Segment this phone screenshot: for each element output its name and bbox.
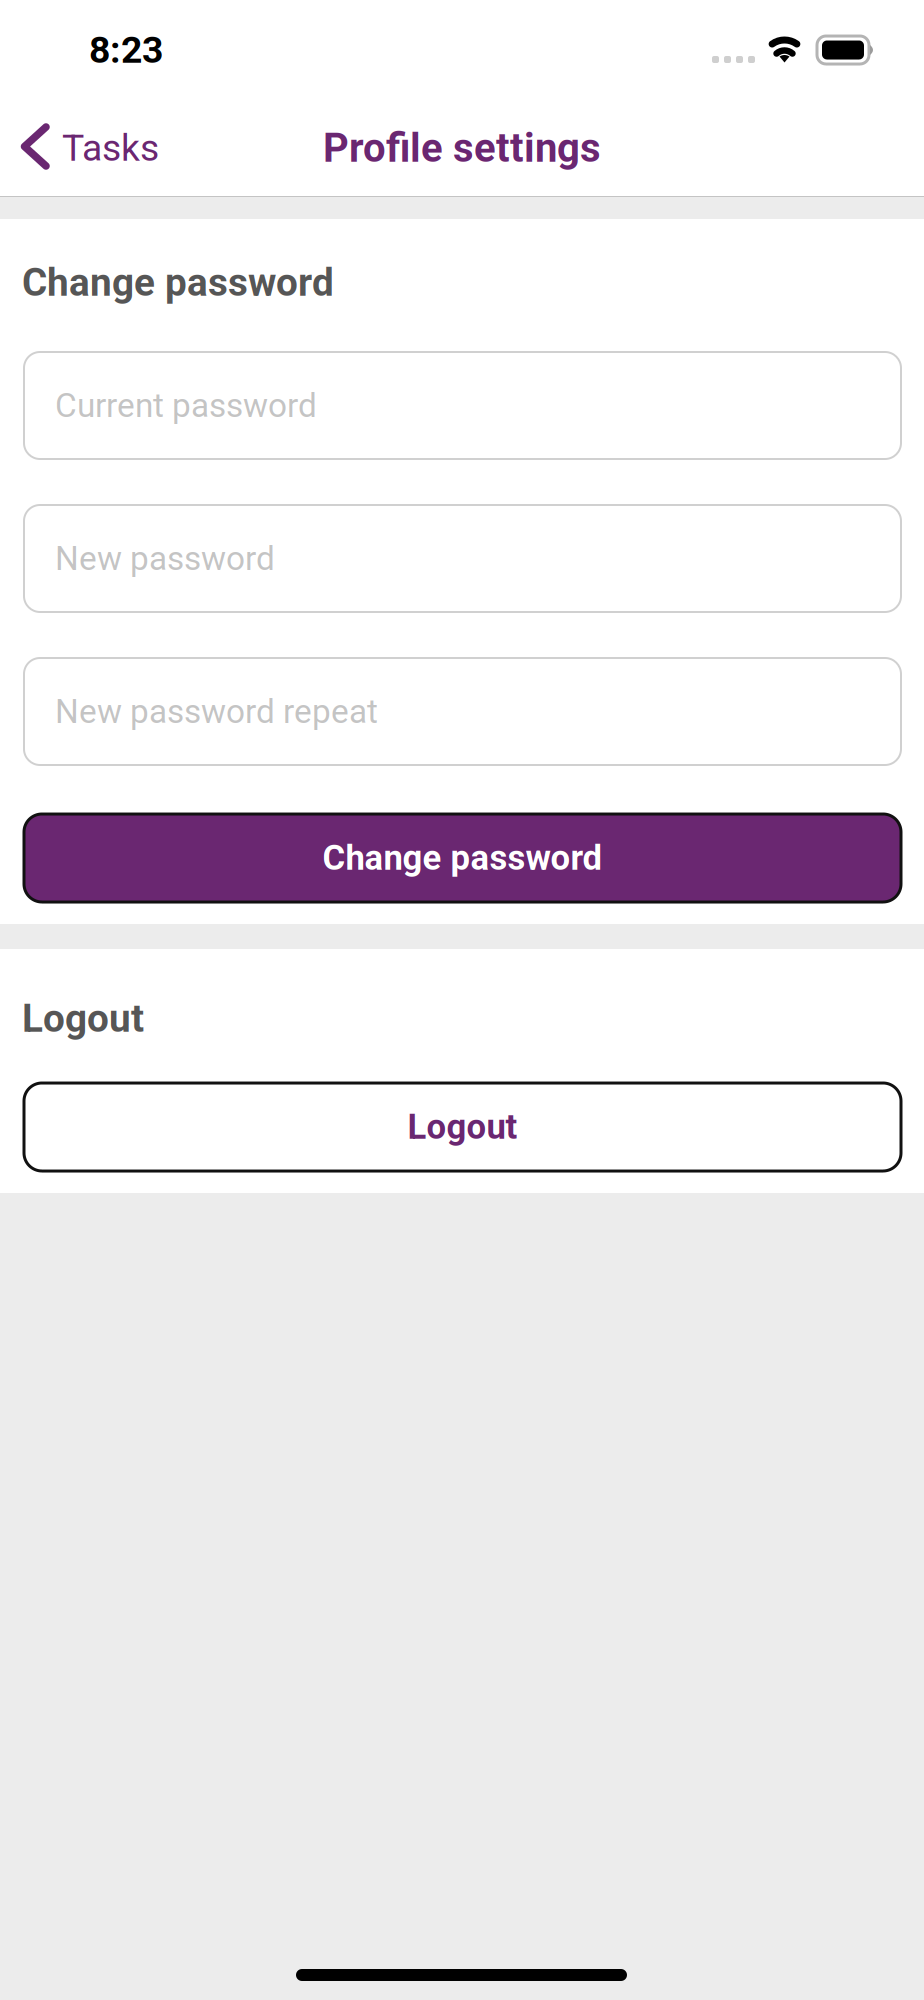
button[interactable]: Current password: [24, 352, 901, 459]
staticText: 8:23: [89, 28, 163, 72]
button[interactable]: Change password: [24, 814, 901, 902]
staticText: Logout: [407, 1107, 517, 1147]
button[interactable]: Logout: [24, 1083, 901, 1171]
staticText: Tasks: [62, 126, 159, 170]
staticText: Change password: [22, 260, 334, 305]
staticText: Profile settings: [323, 125, 601, 171]
button[interactable]: New password repeat: [24, 658, 901, 765]
staticText: Change password: [322, 838, 602, 878]
button[interactable]: Tasks: [0, 100, 250, 196]
staticText: New password: [55, 539, 275, 578]
staticText: Current password: [55, 386, 317, 425]
staticText: Logout: [22, 996, 144, 1041]
staticText: New password repeat: [55, 692, 378, 731]
button[interactable]: New password: [24, 505, 901, 612]
